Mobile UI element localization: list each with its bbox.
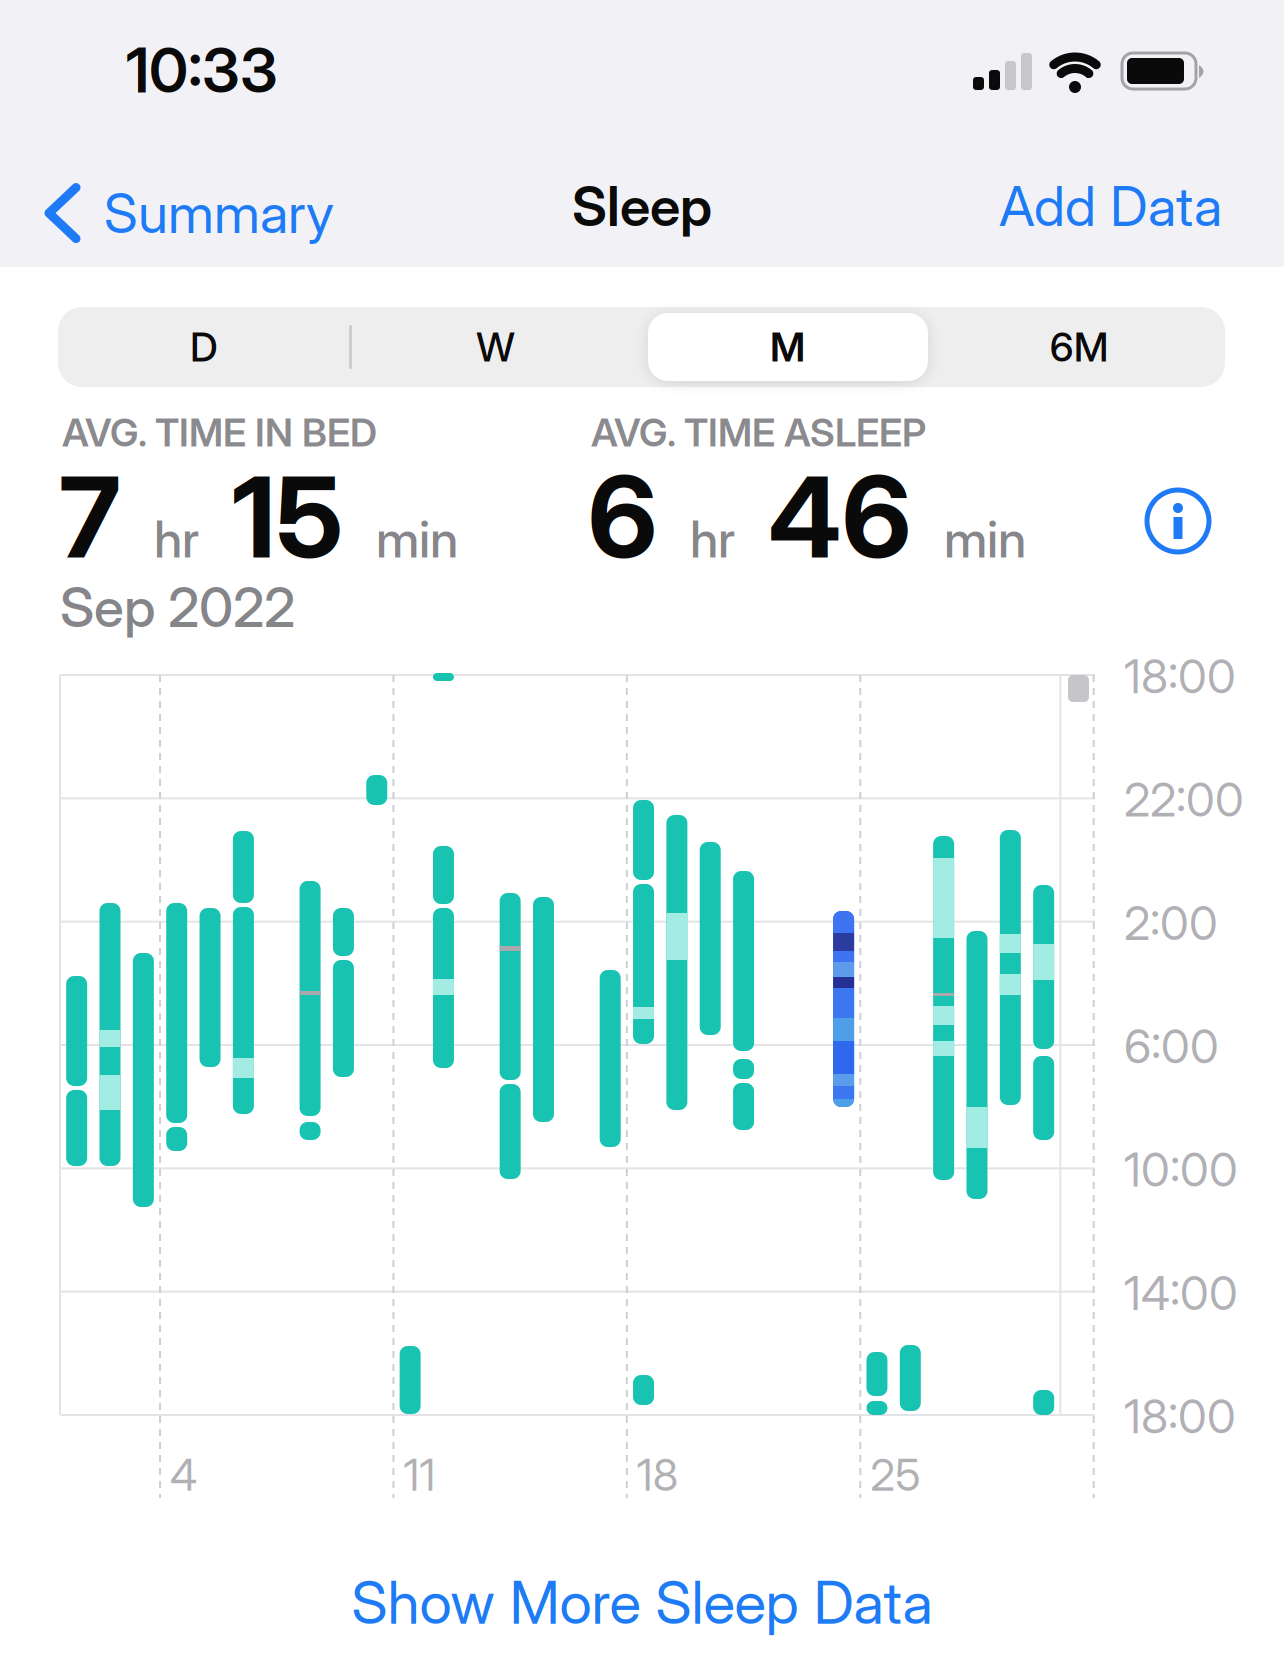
staticText: AVG. TIME IN BED (62, 409, 377, 456)
staticText: 15 (232, 449, 343, 584)
staticText: 25 (870, 1448, 920, 1501)
staticText: 18:00 (1124, 1388, 1236, 1444)
staticText: min (944, 508, 1026, 570)
staticText: 22:00 (1124, 771, 1244, 828)
staticText: Sleep (572, 173, 712, 239)
staticText: hr (690, 508, 735, 570)
staticText: 46 (768, 449, 911, 584)
staticText: Summary (104, 180, 334, 246)
staticText: 6 (588, 449, 657, 584)
staticText: 10:00 (1124, 1141, 1238, 1198)
staticText: AVG. TIME ASLEEP (591, 409, 926, 456)
button[interactable]: D (58, 307, 350, 387)
staticText: 4 (170, 1448, 197, 1501)
button[interactable]: Add Data (999, 173, 1222, 239)
staticText: M (770, 323, 805, 371)
staticText: 18:00 (1124, 648, 1236, 704)
staticText: 14:00 (1124, 1265, 1238, 1321)
staticText: hr (154, 508, 199, 570)
staticText: 6:00 (1124, 1018, 1219, 1074)
staticText: Sep 2022 (60, 574, 295, 640)
staticText: Show More Sleep Data (351, 1567, 932, 1638)
staticText: 18 (637, 1448, 679, 1501)
staticText: 10:33 (126, 33, 278, 107)
button[interactable]: 6M (933, 307, 1225, 387)
staticText: D (190, 323, 218, 371)
button[interactable]: More information (1147, 490, 1209, 552)
staticText: min (376, 508, 458, 570)
staticText: Add Data (999, 173, 1222, 239)
button[interactable]: Show More Sleep Data (351, 1567, 932, 1638)
staticText: 11 (403, 1448, 435, 1501)
button[interactable]: W (350, 307, 642, 387)
staticText: 7 (59, 449, 121, 584)
staticText: W (476, 323, 515, 371)
staticText: 2:00 (1124, 895, 1218, 951)
button[interactable]: M (641, 307, 933, 387)
staticText: 6M (1050, 323, 1109, 371)
button[interactable]: Summary (49, 180, 334, 246)
